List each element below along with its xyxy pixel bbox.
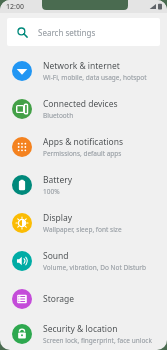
button[interactable]: Display (0, 204, 167, 242)
button[interactable]: Search settings (7, 18, 160, 46)
staticText: Security & location (43, 323, 118, 335)
staticText: Wallpaper, sleep, font size (43, 225, 122, 234)
button[interactable]: Connected devices (0, 90, 167, 128)
staticText: Storage (43, 293, 75, 305)
staticText: Sound (43, 250, 69, 262)
button[interactable]: Network & internet (0, 52, 167, 90)
staticText: Bluetooth (43, 111, 74, 120)
staticText: Wi-Fi, mobile, data usage, hotspot (43, 73, 147, 82)
staticText: 12:00 (6, 2, 24, 12)
staticText: Permissions, default apps (43, 149, 122, 158)
staticText: Apps & notifications (43, 136, 123, 148)
button[interactable]: Battery (0, 166, 167, 204)
button[interactable]: Apps & notifications (0, 128, 167, 166)
staticText: Connected devices (43, 98, 118, 110)
staticText: Volume, vibration, Do Not Disturb (43, 263, 147, 272)
button[interactable]: Security & location (0, 318, 167, 350)
staticText: Network & internet (43, 60, 120, 72)
button[interactable]: Storage (0, 280, 167, 318)
staticText: Battery (43, 174, 73, 186)
staticText: Screen lock, fingerprint, face unlock (43, 336, 152, 345)
staticText: Search settings (38, 27, 96, 38)
staticText: 100% (43, 187, 60, 196)
button[interactable]: Sound (0, 242, 167, 280)
staticText: Display (43, 212, 72, 224)
